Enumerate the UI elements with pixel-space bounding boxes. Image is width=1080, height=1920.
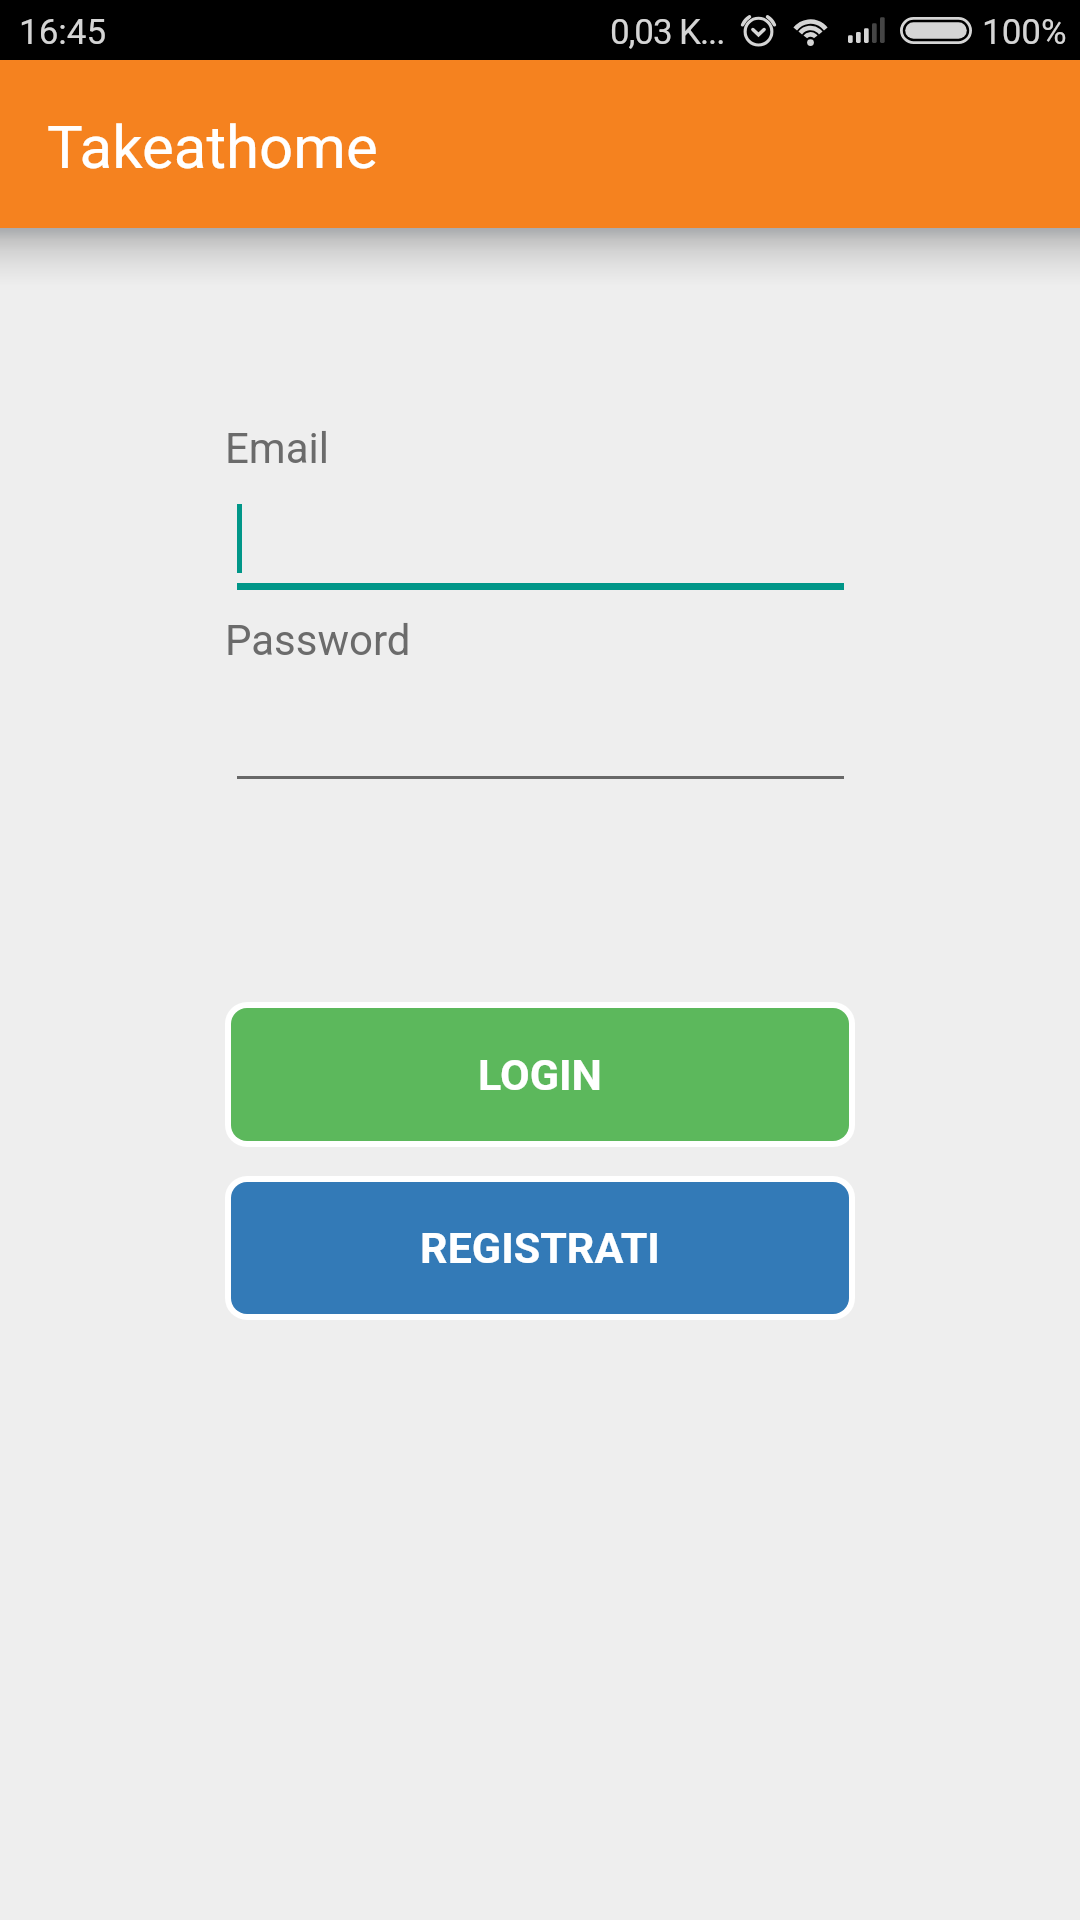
staticText: Takeathome: [47, 112, 378, 182]
staticText: 0,03 K...: [610, 12, 725, 53]
staticText: REGISTRATI: [420, 1223, 660, 1273]
other: Wi-Fi connected: [791, 14, 830, 43]
button[interactable]: Email text field: [237, 500, 844, 590]
staticText: Password: [225, 616, 411, 665]
button[interactable]: Password text field: [237, 690, 844, 779]
button[interactable]: REGISTRATI: [225, 1176, 855, 1320]
button[interactable]: LOGIN: [225, 1002, 855, 1147]
staticText: 16:45: [19, 12, 107, 53]
staticText: Email: [225, 424, 329, 473]
staticText: LOGIN: [478, 1050, 602, 1100]
other: Mobile signal: [848, 17, 885, 43]
other: Battery full: [900, 17, 972, 44]
other: Alarm set: [742, 13, 775, 46]
staticText: 100%: [982, 12, 1067, 53]
